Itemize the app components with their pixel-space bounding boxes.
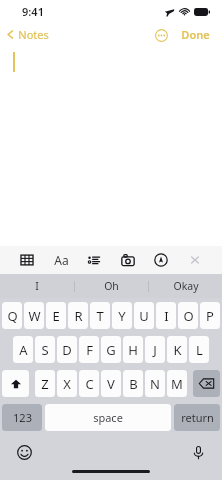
- button[interactable]: S: [35, 336, 55, 363]
- button[interactable]: Camera: [117, 249, 139, 271]
- staticText: 123: [13, 410, 32, 425]
- staticText: J: [153, 341, 157, 359]
- button[interactable]: O: [178, 302, 198, 329]
- staticText: W: [28, 307, 41, 325]
- staticText: E: [52, 307, 60, 325]
- staticText: S: [41, 341, 49, 359]
- button[interactable]: More options: [152, 26, 170, 44]
- button[interactable]: Notes: [0, 23, 55, 46]
- button[interactable]: Done: [177, 24, 214, 45]
- button[interactable]: M: [167, 370, 187, 397]
- button[interactable]: Emoji: [14, 442, 34, 462]
- staticText: A: [19, 341, 28, 359]
- staticText: Oh: [104, 279, 119, 293]
- button[interactable]: G: [101, 336, 121, 363]
- staticText: P: [206, 307, 214, 325]
- button[interactable]: I: [156, 302, 176, 329]
- button[interactable]: R: [68, 302, 88, 329]
- staticText: X: [63, 375, 71, 393]
- button[interactable]: Checklist: [83, 249, 105, 271]
- staticText: O: [183, 307, 194, 325]
- button[interactable]: E: [46, 302, 66, 329]
- button[interactable]: return: [174, 404, 220, 431]
- button[interactable]: C: [79, 370, 99, 397]
- button[interactable]: P: [200, 302, 220, 329]
- button[interactable]: N: [145, 370, 165, 397]
- button[interactable]: W: [24, 302, 44, 329]
- staticText: Notes: [18, 27, 49, 42]
- button[interactable]: 123: [2, 404, 42, 431]
- staticText: I: [35, 279, 39, 293]
- button[interactable]: T: [90, 302, 110, 329]
- staticText: V: [107, 375, 115, 393]
- button[interactable]: Oh: [75, 274, 148, 298]
- staticText: K: [173, 341, 182, 359]
- button[interactable]: Table: [16, 249, 38, 271]
- staticText: N: [150, 375, 160, 393]
- button[interactable]: Close: [184, 249, 206, 271]
- button[interactable]: Z: [35, 370, 55, 397]
- button[interactable]: Y: [112, 302, 132, 329]
- staticText: F: [86, 341, 93, 359]
- staticText: H: [128, 341, 138, 359]
- staticText: U: [139, 307, 149, 325]
- button[interactable]: Q: [2, 302, 22, 329]
- button[interactable]: H: [123, 336, 143, 363]
- button[interactable]: Dictation: [188, 442, 208, 462]
- staticText: return: [181, 410, 214, 425]
- staticText: Done: [181, 27, 210, 42]
- button[interactable]: K: [167, 336, 187, 363]
- button[interactable]: U: [134, 302, 154, 329]
- button[interactable]: B: [123, 370, 143, 397]
- staticText: R: [74, 307, 83, 325]
- staticText: space: [93, 410, 123, 425]
- button[interactable]: Format: [50, 249, 72, 271]
- button[interactable]: Okay: [149, 274, 222, 298]
- staticText: Aa: [54, 252, 69, 268]
- staticText: Okay: [173, 279, 199, 293]
- staticText: 9:41: [22, 4, 44, 19]
- staticText: B: [129, 375, 138, 393]
- button[interactable]: D: [57, 336, 77, 363]
- staticText: D: [62, 341, 72, 359]
- staticText: Q: [7, 307, 18, 325]
- button[interactable]: J: [145, 336, 165, 363]
- staticText: L: [196, 341, 203, 359]
- button[interactable]: X: [57, 370, 77, 397]
- button[interactable]: V: [101, 370, 121, 397]
- staticText: Y: [118, 307, 126, 325]
- button[interactable]: space: [45, 404, 171, 431]
- staticText: I: [164, 307, 169, 325]
- staticText: T: [96, 307, 104, 325]
- button[interactable]: L: [189, 336, 209, 363]
- button[interactable]: Backspace: [193, 370, 220, 397]
- staticText: G: [106, 341, 116, 359]
- button[interactable]: A: [13, 336, 33, 363]
- button[interactable]: Shift: [2, 370, 29, 397]
- button[interactable]: I: [0, 274, 74, 298]
- button[interactable]: Markup: [150, 249, 172, 271]
- staticText: M: [171, 375, 183, 393]
- staticText: C: [85, 375, 94, 393]
- staticText: Z: [41, 375, 49, 393]
- button[interactable]: F: [79, 336, 99, 363]
